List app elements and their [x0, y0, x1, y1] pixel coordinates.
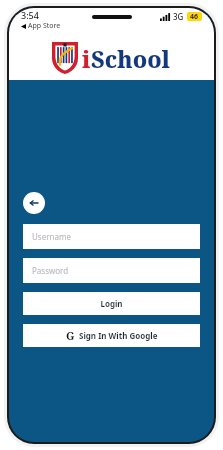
staticText: Sign In With Google [79, 330, 158, 341]
staticText: i [82, 43, 91, 74]
button[interactable]: Login [23, 292, 200, 315]
button[interactable]: Password [23, 258, 200, 283]
button[interactable]: Username [23, 224, 200, 249]
staticText: G [66, 328, 75, 343]
staticText: Login [100, 298, 123, 309]
staticText: 3:54 [21, 9, 39, 21]
button[interactable]: Back [23, 192, 45, 214]
staticText: 46 [190, 12, 199, 21]
staticText: App Store [28, 21, 61, 31]
button[interactable]: G [23, 324, 200, 347]
staticText: 3G [173, 11, 184, 22]
staticText: School [91, 43, 171, 74]
staticText: Username [32, 231, 71, 242]
staticText: Password [32, 265, 69, 276]
